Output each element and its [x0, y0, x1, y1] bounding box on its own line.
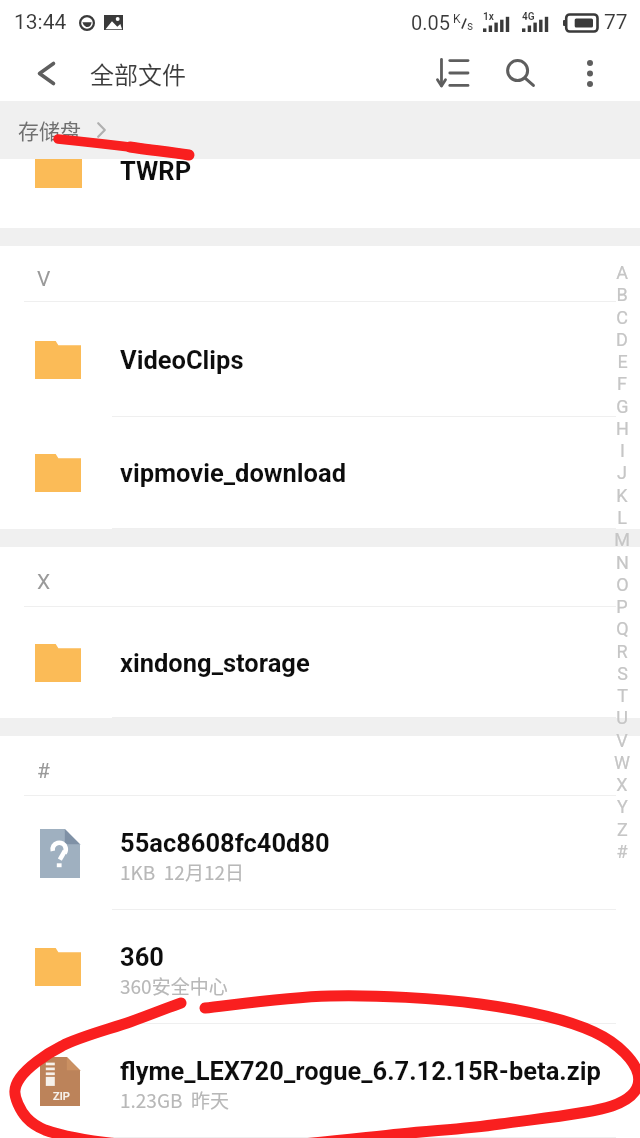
staticText: 13:44 [14, 10, 67, 35]
staticText: s [467, 19, 474, 33]
staticText: U [616, 707, 628, 728]
button[interactable]: xindong_storage [0, 607, 640, 718]
staticText: Z [617, 819, 628, 840]
button[interactable]: Search [492, 45, 549, 101]
button[interactable]: vipmovie_download [0, 417, 640, 529]
staticText: X [616, 774, 628, 795]
staticText: F [617, 373, 627, 394]
button[interactable]: More options [561, 45, 618, 101]
staticText: 360 [120, 942, 164, 972]
staticText: Y [617, 796, 628, 817]
staticText: xindong_storage [120, 648, 310, 678]
staticText: B [616, 284, 628, 305]
staticText: T [617, 685, 628, 706]
staticText: V [37, 267, 51, 292]
staticText: 4G [522, 11, 535, 23]
button[interactable]: 55ac8608fc40d80 [0, 796, 640, 910]
staticText: 0.05 [411, 11, 450, 34]
staticText: O [616, 574, 629, 595]
button[interactable]: 360 [0, 910, 640, 1024]
staticText: V [616, 730, 628, 751]
button[interactable]: 存储盘 [18, 115, 106, 145]
staticText: N [616, 552, 629, 573]
staticText: 1x [483, 11, 494, 23]
staticText: S [617, 663, 628, 684]
staticText: 1.23GB 昨天 [120, 1086, 230, 1114]
staticText: Q [616, 618, 629, 639]
button[interactable]: VideoClips [0, 302, 640, 417]
staticText: K [616, 485, 628, 506]
staticText: ZIP [53, 1090, 70, 1103]
button[interactable]: Back [18, 45, 74, 101]
staticText: 1KB 12月12日 [120, 858, 244, 886]
button[interactable]: Sort [424, 45, 481, 101]
staticText: E [617, 351, 628, 372]
staticText: H [616, 418, 629, 439]
staticText: A [616, 262, 628, 283]
staticText: # [616, 841, 628, 862]
staticText: P [616, 596, 628, 617]
staticText: 77 [604, 10, 628, 35]
staticText: 全部文件 [90, 56, 186, 91]
staticText: VideoClips [120, 345, 244, 375]
staticText: vipmovie_download [120, 458, 346, 488]
staticText: C [616, 307, 628, 328]
staticText: M [614, 529, 630, 550]
staticText: L [617, 507, 627, 528]
staticText: K [453, 12, 461, 26]
staticText: X [37, 570, 51, 595]
staticText: G [616, 396, 629, 417]
staticText: TWRP [120, 159, 192, 186]
staticText: 360安全中心 [120, 972, 228, 1000]
staticText: D [616, 329, 628, 350]
staticText: 55ac8608fc40d80 [120, 828, 330, 858]
staticText: 存储盘 [18, 115, 81, 145]
staticText: R [616, 641, 628, 662]
staticText: W [614, 752, 630, 773]
staticText: # [37, 759, 50, 784]
button[interactable]: TWRP [0, 159, 640, 228]
staticText: I [620, 440, 625, 461]
button[interactable]: Alphabet index [603, 0, 640, 1138]
button[interactable]: ZIP [0, 1024, 640, 1138]
staticText: flyme_LEX720_rogue_6.7.12.15R-beta.zip [120, 1056, 601, 1086]
staticText: J [617, 462, 627, 483]
